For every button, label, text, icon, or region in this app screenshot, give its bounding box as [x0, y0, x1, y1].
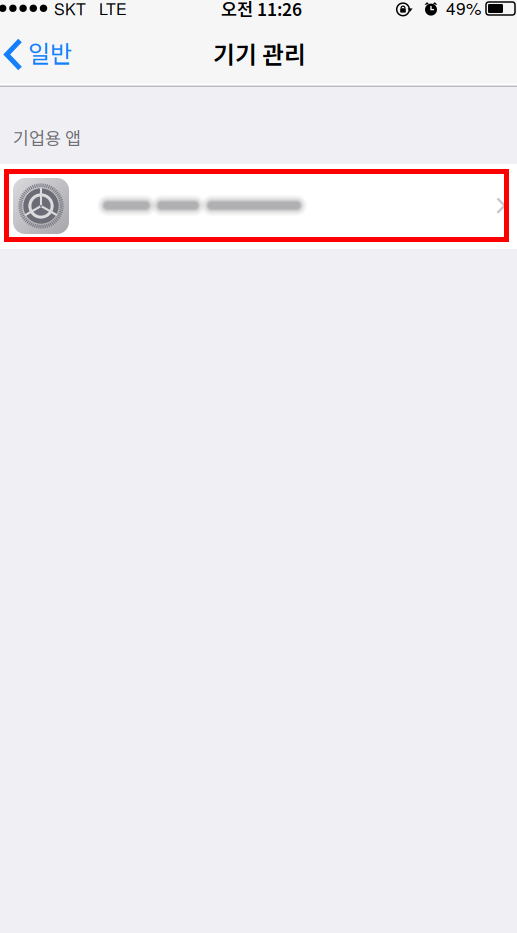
staticText: 기기 관리: [213, 36, 306, 71]
staticText: LTE: [99, 0, 127, 20]
staticText: 오전 11:26: [221, 0, 302, 21]
staticText: 기업용 앱: [13, 125, 81, 150]
button[interactable]: [0, 164, 517, 249]
staticText: SKT: [54, 0, 86, 20]
button[interactable]: 일반: [0, 33, 88, 83]
staticText: 일반: [28, 35, 72, 70]
staticText: 49%: [446, 0, 481, 20]
